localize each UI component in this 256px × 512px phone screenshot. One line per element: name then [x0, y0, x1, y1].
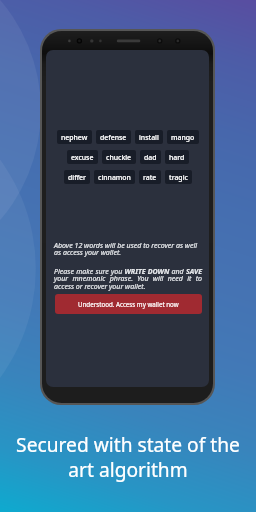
staticText: Understood. Access my wallet now	[78, 300, 179, 308]
staticText: nephew	[61, 133, 88, 142]
staticText: mango	[171, 133, 195, 142]
staticText: Above 12 words will be used to recover a…	[54, 240, 202, 257]
button[interactable]: dad	[140, 150, 161, 164]
button[interactable]: cinnamon	[94, 170, 135, 184]
button[interactable]: hard	[165, 150, 189, 164]
staticText: install	[139, 133, 159, 142]
button[interactable]: defense	[96, 130, 131, 144]
staticText: excuse	[71, 153, 94, 162]
staticText: hard	[169, 153, 185, 162]
button[interactable]: excuse	[67, 150, 98, 164]
staticText: Secured with state of the art algorithm	[0, 431, 256, 482]
button[interactable]: install	[135, 130, 163, 144]
button[interactable]: rate	[139, 170, 161, 184]
staticText: chuckle	[106, 153, 132, 162]
button[interactable]: tragic	[165, 170, 192, 184]
button[interactable]: mango	[167, 130, 199, 144]
staticText: defense	[100, 133, 127, 142]
staticText: differ	[68, 173, 86, 182]
button[interactable]: differ	[64, 170, 90, 184]
staticText: dad	[144, 153, 157, 162]
staticText: cinnamon	[98, 173, 131, 182]
button[interactable]: Understood. Access my wallet now	[55, 294, 202, 314]
staticText: Please make sure you WRITE DOWN and SAVE…	[54, 266, 202, 291]
staticText: rate	[143, 173, 157, 182]
button[interactable]: nephew	[57, 130, 92, 144]
staticText: tragic	[169, 173, 188, 182]
button[interactable]: chuckle	[102, 150, 136, 164]
